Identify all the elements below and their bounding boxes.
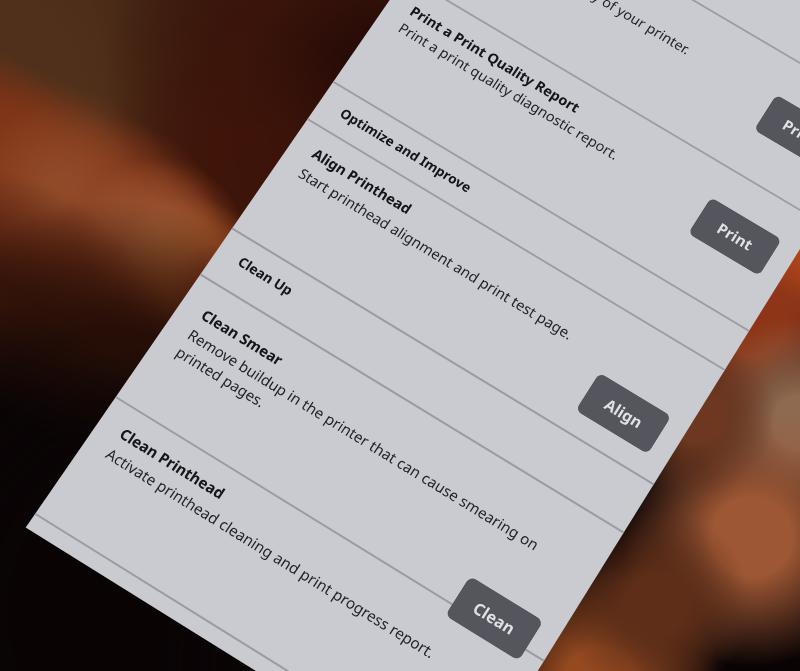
staticText: Remove buildup in the printer that can c…: [172, 325, 556, 581]
staticText: Print: [779, 115, 800, 151]
staticText: Print a print quality diagnostic report.: [395, 18, 623, 164]
button[interactable]: Align: [575, 372, 672, 454]
staticText: Start printhead alignment and print test…: [295, 164, 577, 343]
button[interactable]: Clean Up: [235, 252, 298, 300]
staticText: Clean Printhead: [116, 423, 229, 503]
button[interactable]: Print: [754, 94, 800, 172]
button[interactable]: Clean: [445, 576, 544, 661]
staticText: Clean: [469, 597, 520, 640]
staticText: Check the print quality of your printer.: [467, 0, 695, 58]
staticText: Clean Smear: [198, 305, 288, 370]
staticText: Clean Up: [235, 252, 298, 300]
staticText: Print: [713, 218, 758, 255]
staticText: Align Printhead: [309, 144, 416, 218]
button[interactable]: Print: [688, 197, 782, 276]
staticText: Optimize and Improve: [337, 104, 475, 196]
staticText: Activate printhead cleaning and print pr…: [102, 444, 439, 662]
staticText: Print a Print Quality Report: [407, 2, 584, 116]
button[interactable]: Optimize and Improve: [337, 104, 475, 196]
staticText: Align: [600, 394, 647, 433]
